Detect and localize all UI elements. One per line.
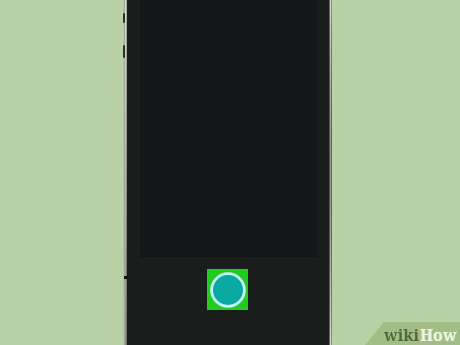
staticText: wiki bbox=[384, 324, 420, 345]
staticText: How bbox=[420, 324, 457, 345]
button[interactable]: Power button bbox=[123, 45, 125, 58]
button[interactable]: Open app bbox=[207, 269, 248, 310]
button[interactable]: Volume button bbox=[123, 13, 125, 23]
